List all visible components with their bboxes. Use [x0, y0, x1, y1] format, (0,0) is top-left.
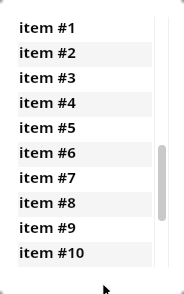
staticText: item #10 [19, 242, 85, 262]
staticText: item #3 [19, 67, 76, 87]
button[interactable]: item #3 [18, 67, 152, 92]
staticText: item #6 [19, 142, 76, 162]
button[interactable]: item #6 [18, 142, 152, 167]
staticText: item #5 [19, 117, 76, 137]
button[interactable]: item #1 [18, 17, 152, 42]
staticText: item #7 [19, 167, 76, 187]
button[interactable]: item #8 [18, 192, 152, 217]
button[interactable]: item #4 [18, 92, 152, 117]
staticText: item #2 [19, 42, 76, 62]
staticText: item #4 [19, 92, 76, 112]
button[interactable]: item #5 [18, 117, 152, 142]
staticText: item #1 [19, 17, 76, 37]
button[interactable]: item #10 [18, 242, 152, 267]
button[interactable]: item #2 [18, 42, 152, 67]
button[interactable]: item #9 [18, 217, 152, 242]
staticText: item #8 [19, 192, 76, 212]
button[interactable]: item #7 [18, 167, 152, 192]
staticText: item #9 [19, 217, 76, 237]
